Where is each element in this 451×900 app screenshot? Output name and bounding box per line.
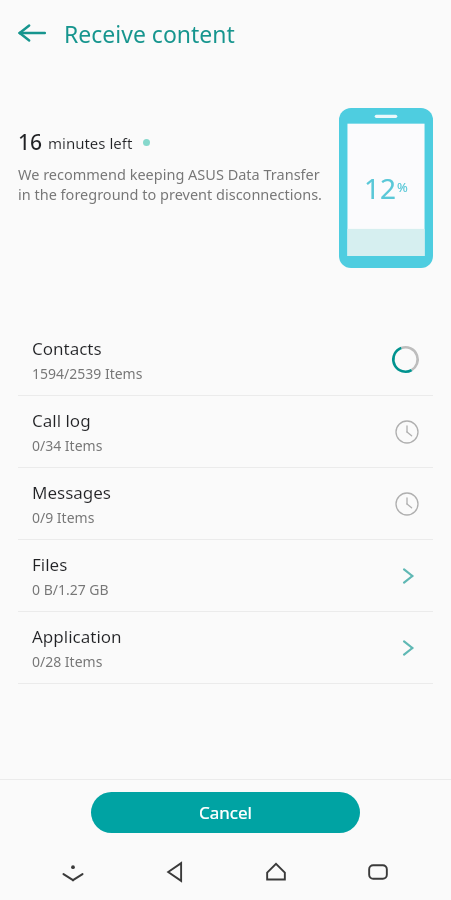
staticText: 16 — [18, 128, 43, 157]
staticText: Files — [32, 553, 68, 576]
staticText: Application — [32, 625, 122, 648]
button[interactable]: Files — [0, 540, 451, 611]
button[interactable]: Call log — [0, 396, 451, 467]
staticText: Contacts — [32, 337, 102, 360]
staticText: We recommend keeping ASUS Data Transfer … — [18, 164, 329, 205]
staticText: 0/9 Items — [32, 508, 95, 527]
staticText: Call log — [32, 409, 91, 432]
button[interactable]: Back — [147, 844, 203, 900]
button[interactable]: Recents — [350, 844, 406, 900]
staticText: 0 B/1.27 GB — [32, 580, 109, 599]
staticText: % — [397, 178, 408, 196]
staticText: minutes left — [48, 133, 133, 153]
staticText: 0/34 Items — [32, 436, 103, 455]
staticText: Cancel — [199, 801, 252, 824]
staticText: 12 — [364, 169, 397, 207]
staticText: Messages — [32, 481, 112, 504]
button[interactable]: Application — [0, 612, 451, 683]
button[interactable]: Contacts — [0, 324, 451, 395]
button[interactable]: Back — [8, 9, 56, 57]
button[interactable]: Cancel — [91, 792, 360, 833]
staticText: 0/28 Items — [32, 652, 103, 671]
button[interactable]: Hide — [45, 844, 101, 900]
staticText: 1594/2539 Items — [32, 364, 143, 383]
button[interactable]: Home — [248, 844, 304, 900]
staticText: Receive content — [64, 18, 235, 49]
button[interactable]: Messages — [0, 468, 451, 539]
